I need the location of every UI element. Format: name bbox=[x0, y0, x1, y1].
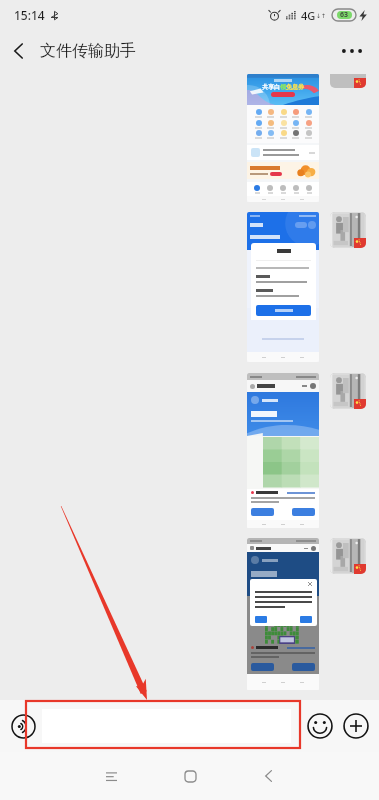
staticText: 文件传输助手 bbox=[40, 41, 136, 61]
staticText: 63 bbox=[340, 10, 349, 20]
button[interactable]: More functions bbox=[341, 711, 371, 741]
staticText: 4G bbox=[301, 8, 316, 23]
button[interactable]: Screenshot bbox=[247, 373, 319, 528]
button[interactable]: Screenshot bbox=[247, 212, 319, 362]
staticText: 免息券 bbox=[286, 83, 304, 91]
button[interactable]: More options bbox=[337, 36, 367, 66]
staticText: 领 bbox=[280, 83, 286, 91]
staticText: 15:14 bbox=[14, 7, 45, 23]
button[interactable]: Screenshot bbox=[247, 538, 319, 690]
button[interactable]: Emoji bbox=[305, 711, 335, 741]
button[interactable]: Recents bbox=[88, 753, 134, 799]
button[interactable]: Contact avatar bbox=[330, 212, 366, 248]
button[interactable]: Voice input bbox=[6, 709, 40, 743]
button[interactable]: Home bbox=[167, 753, 213, 799]
button[interactable]: Screenshot bbox=[247, 74, 319, 202]
button[interactable]: Back bbox=[245, 753, 291, 799]
button[interactable]: Back bbox=[4, 36, 34, 66]
staticText: 共享白 bbox=[262, 83, 280, 91]
staticText: ↓↑ bbox=[316, 12, 327, 19]
button[interactable]: Contact avatar bbox=[330, 74, 366, 88]
button[interactable]: Contact avatar bbox=[330, 538, 366, 574]
button[interactable]: Contact avatar bbox=[330, 373, 366, 409]
